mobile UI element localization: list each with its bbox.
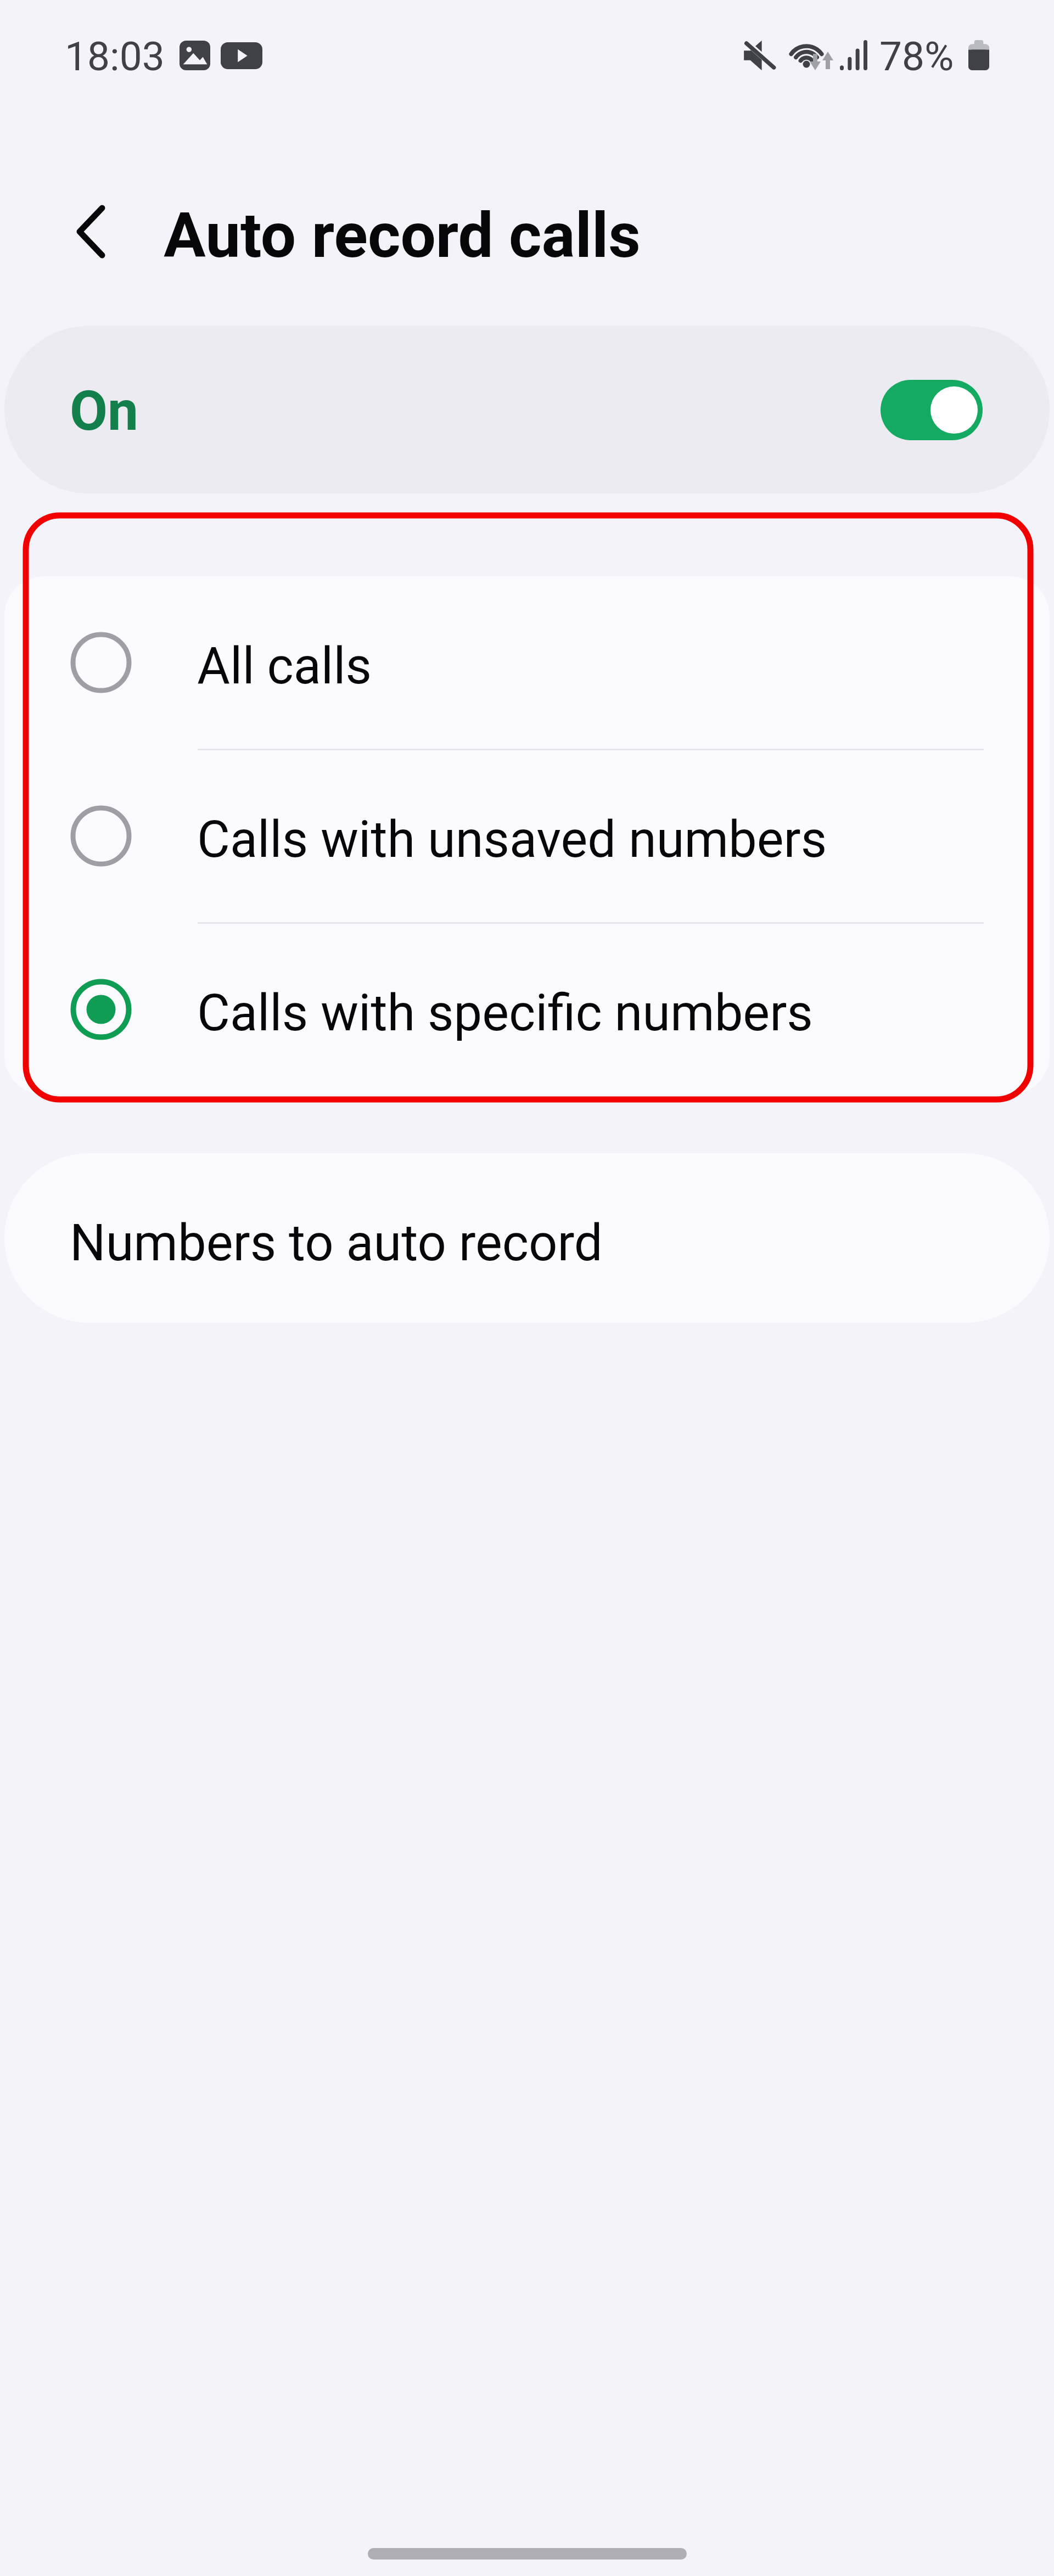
staticText: 18:03	[65, 33, 165, 80]
button[interactable]: On	[4, 326, 1050, 493]
staticText: All calls	[197, 637, 372, 696]
staticText: Calls with specific numbers	[197, 984, 813, 1043]
button[interactable]: Numbers to auto record	[4, 1153, 1050, 1323]
staticText: On	[70, 379, 139, 443]
button[interactable]: Auto record calls switch	[881, 380, 983, 440]
staticText: 78%	[879, 33, 954, 80]
button[interactable]: Navigate up	[42, 193, 119, 270]
staticText: Calls with unsaved numbers	[197, 810, 827, 869]
button[interactable]: Calls with unsaved numbers	[4, 750, 1050, 922]
staticText: Numbers to auto record	[70, 1214, 603, 1273]
button[interactable]: All calls	[4, 576, 1050, 749]
staticText: Auto record calls	[164, 199, 641, 272]
button[interactable]: Calls with specific numbers	[4, 923, 1050, 1095]
